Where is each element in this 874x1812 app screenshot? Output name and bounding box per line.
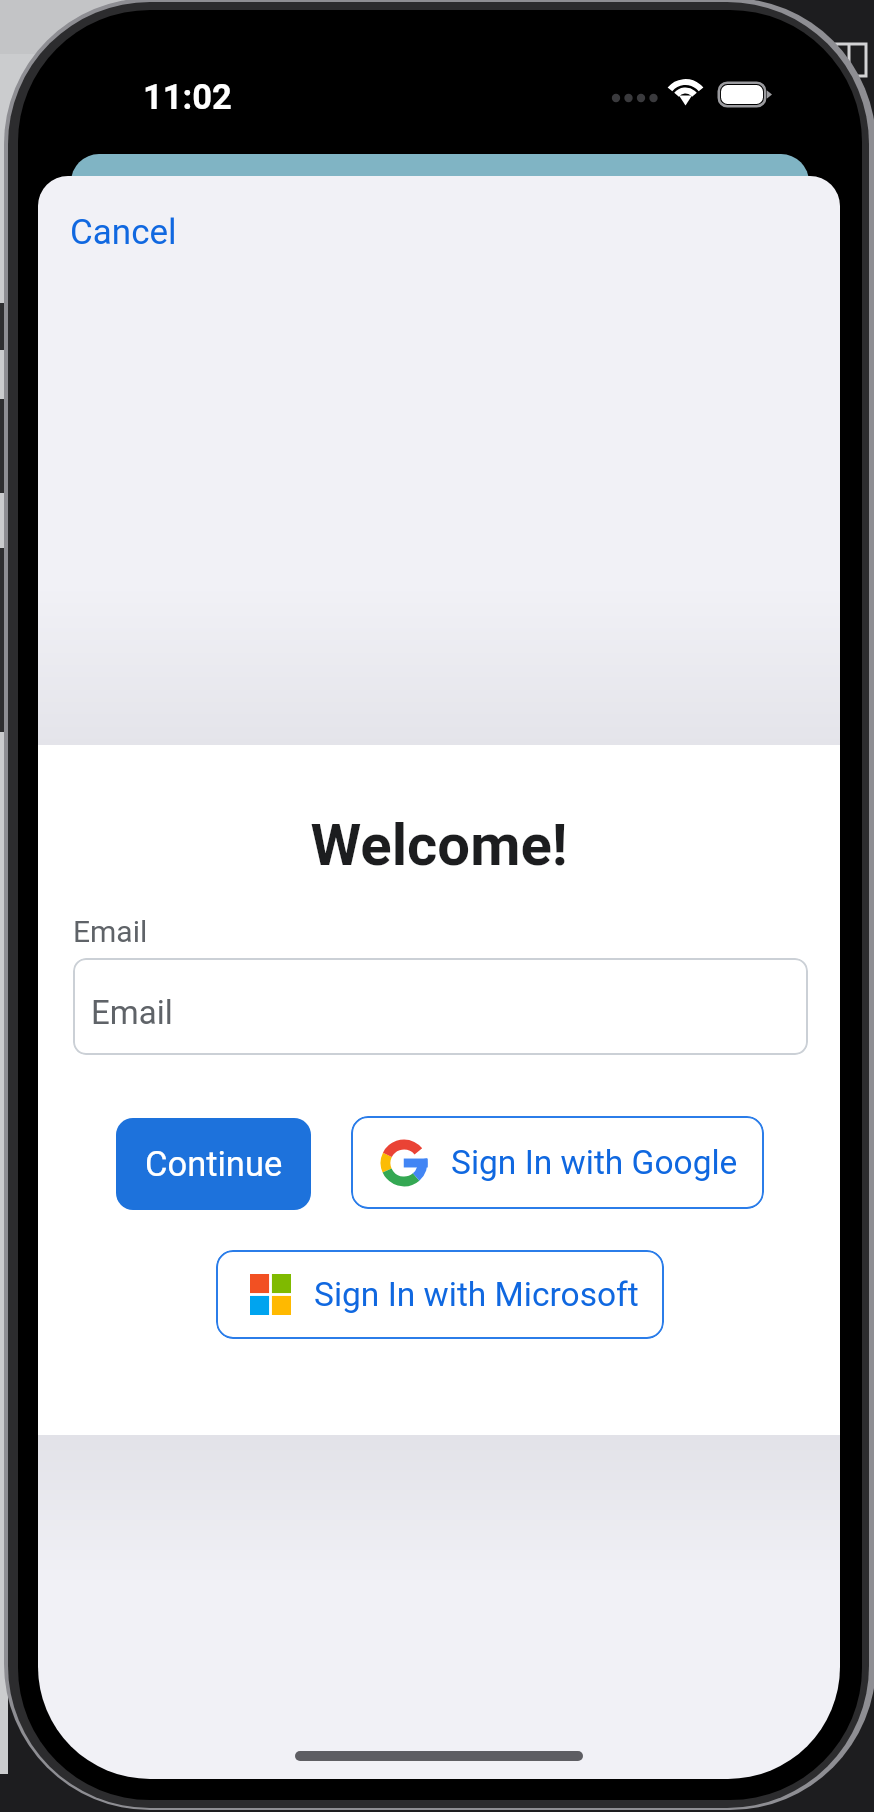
staticText: Sign In with Google bbox=[451, 1143, 738, 1182]
button[interactable]: Sign In with Microsoft bbox=[216, 1250, 664, 1339]
button[interactable]: Sign In with Google bbox=[351, 1116, 764, 1209]
staticText: Cancel bbox=[70, 212, 177, 253]
button[interactable]: Email bbox=[73, 958, 808, 1055]
staticText: Email bbox=[73, 914, 148, 949]
staticText: Email bbox=[91, 993, 173, 1032]
button[interactable]: Continue bbox=[116, 1118, 311, 1210]
staticText: Continue bbox=[145, 1144, 283, 1184]
staticText: 11:02 bbox=[143, 77, 232, 117]
staticText: Welcome! bbox=[38, 811, 840, 879]
button[interactable]: Cancel bbox=[64, 206, 183, 259]
staticText: Sign In with Microsoft bbox=[314, 1275, 639, 1314]
